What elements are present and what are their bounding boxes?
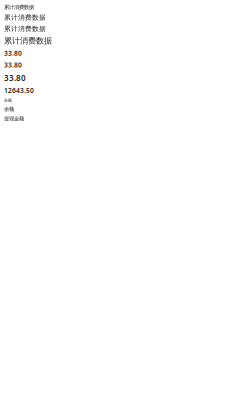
staticText: 累计消费数据 xyxy=(4,25,46,33)
staticText: 累计消费数据 xyxy=(4,36,52,46)
staticText: 33.80 xyxy=(4,49,22,58)
staticText: 提现金额 xyxy=(4,115,24,122)
staticText: 12643.50 xyxy=(4,86,34,95)
staticText: 累计消费数据 xyxy=(4,14,46,22)
staticText: 余额 xyxy=(4,106,14,112)
staticText: 33.80 xyxy=(4,72,26,83)
staticText: 累计消费数据 xyxy=(4,4,34,11)
staticText: 33.80 xyxy=(4,61,22,69)
staticText: 余额 xyxy=(4,98,12,103)
